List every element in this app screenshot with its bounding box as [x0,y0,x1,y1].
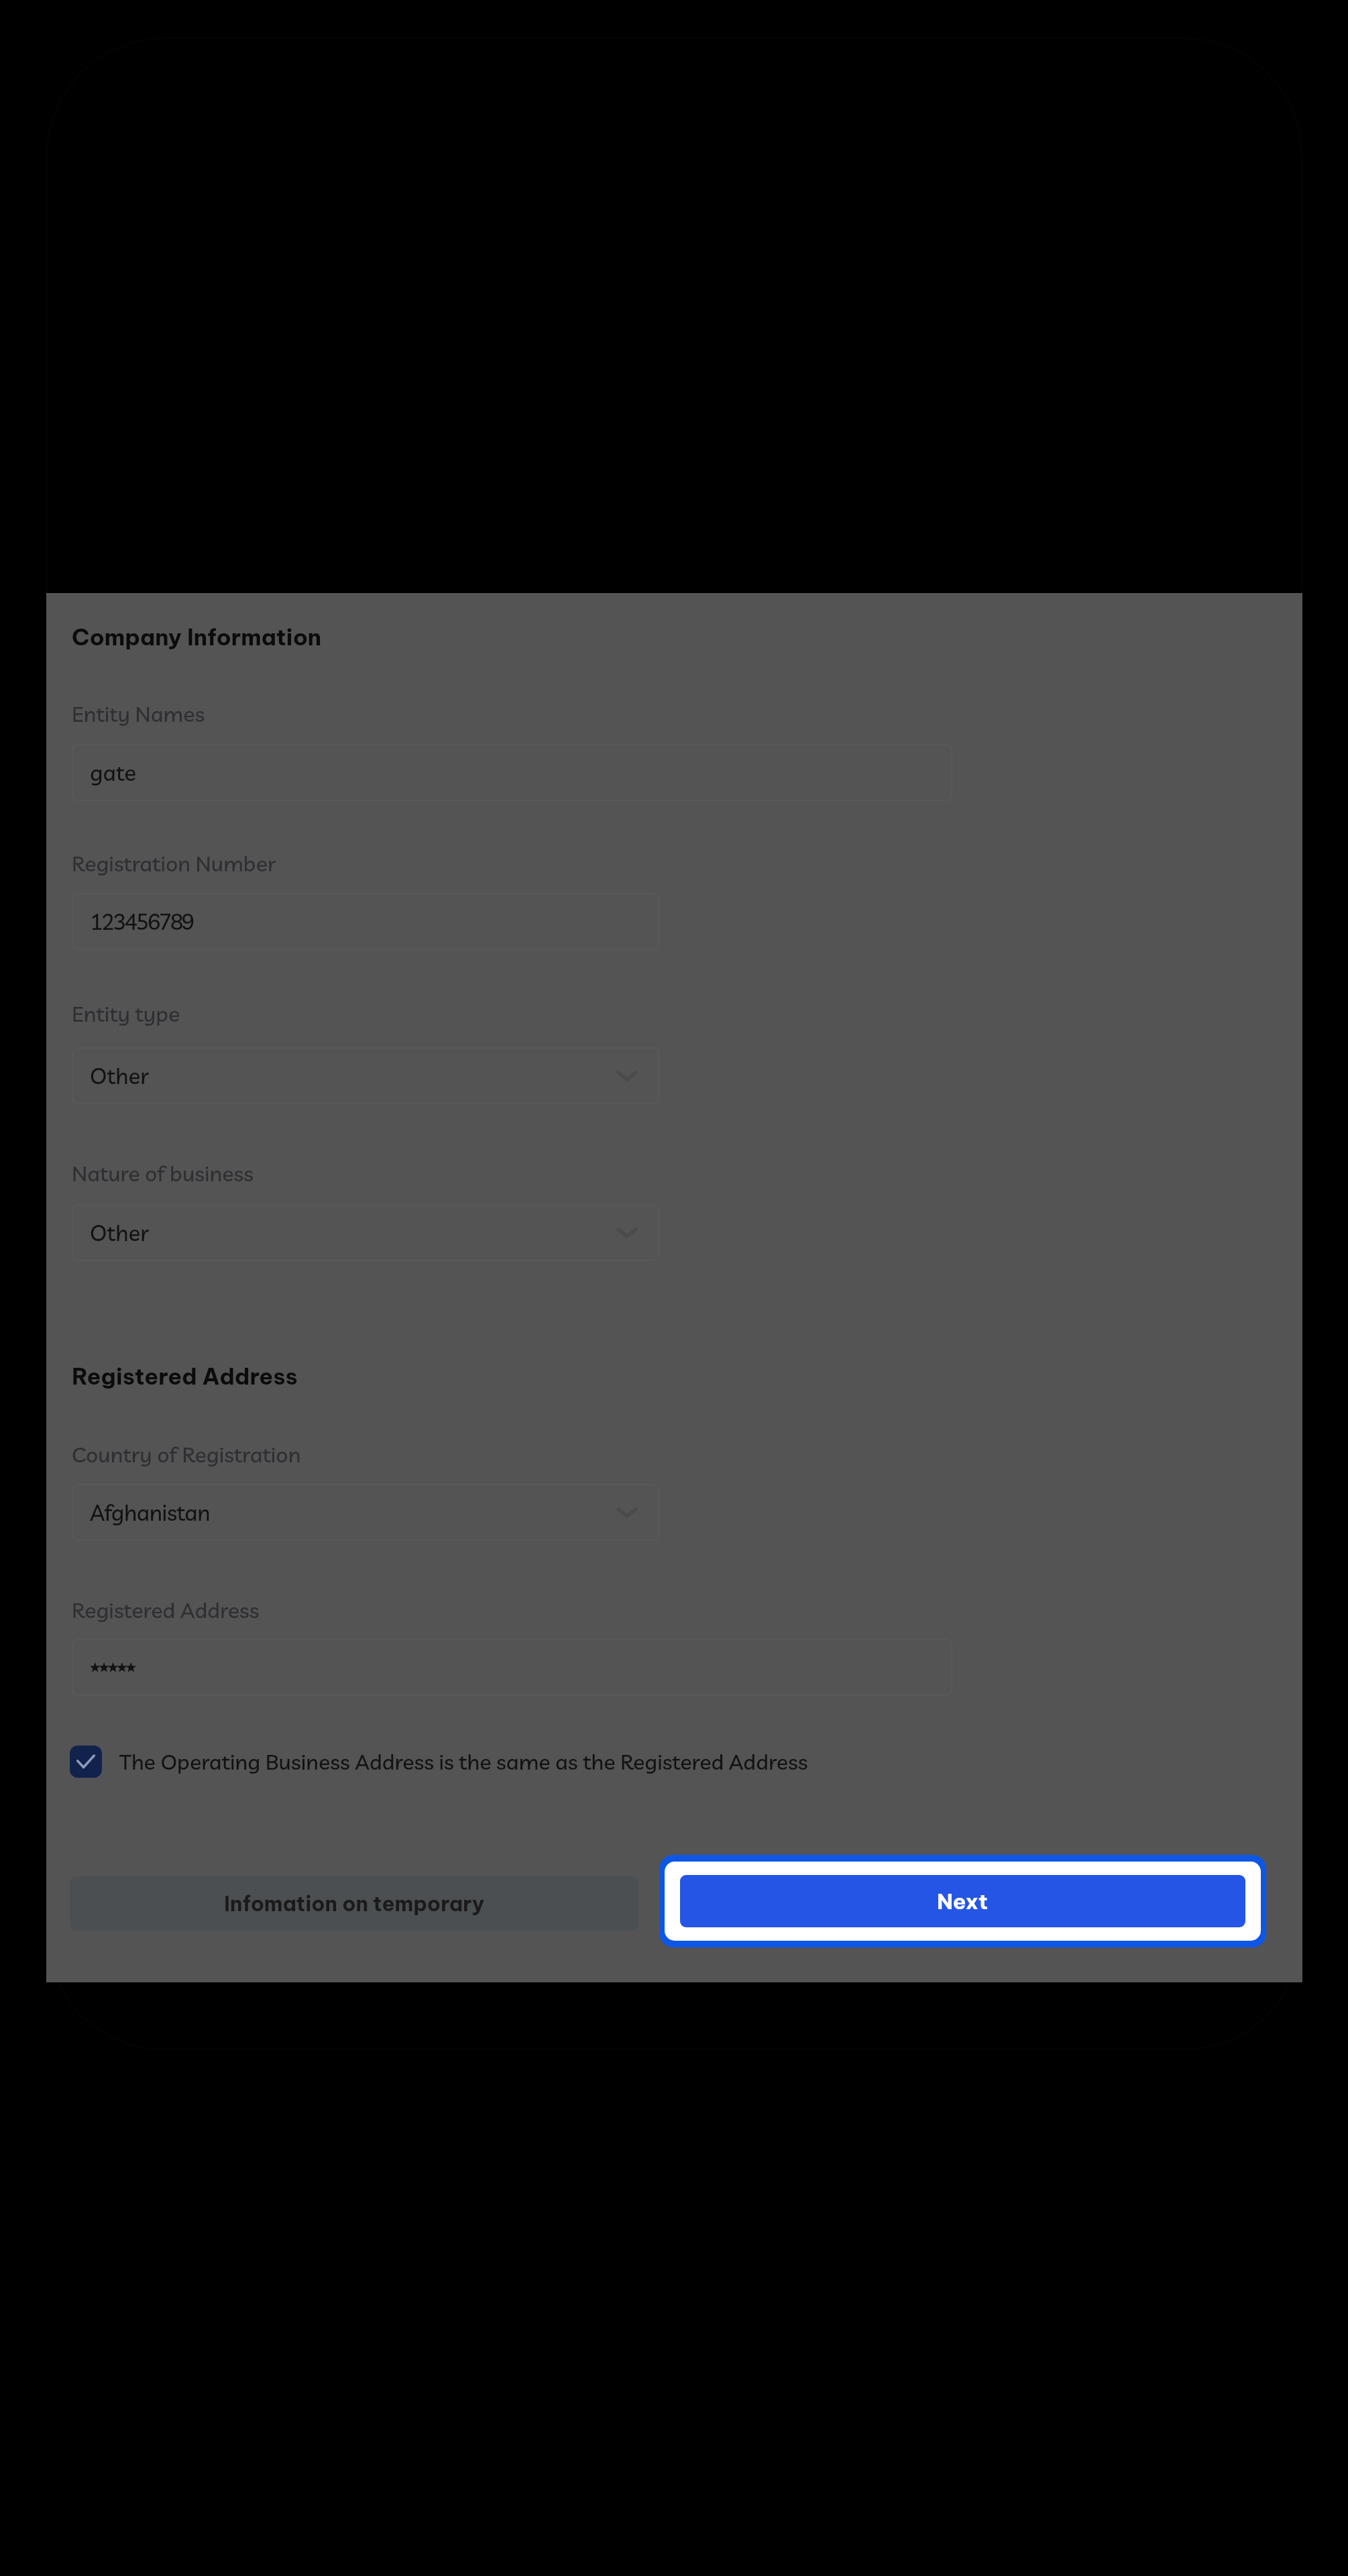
staticText: 123456789 [90,908,193,935]
staticText: Registration Number [72,850,276,877]
staticText: Registered Address [72,1362,298,1391]
button[interactable]: 123456789 [72,893,659,950]
staticText: Nature of business [72,1160,254,1187]
staticText: gate [90,759,137,786]
button[interactable]: Other [72,1204,659,1261]
button[interactable]: The Operating Business Address is the sa… [70,1740,808,1783]
staticText: Other [90,1219,150,1246]
staticText: Registered Address [72,1597,260,1623]
other: Open Other dropdown [617,1223,637,1243]
button[interactable] [72,1639,952,1696]
button[interactable]: Next [680,1875,1245,1927]
staticText: Country of Registration [72,1441,301,1468]
other: Open Afghanistan dropdown [617,1503,637,1523]
staticText: Infomation on temporary [224,1890,485,1917]
button[interactable]: Afghanistan [72,1484,659,1541]
staticText: Afghanistan [90,1499,211,1526]
staticText: Company Information [72,623,322,651]
button[interactable]: Infomation on temporary [70,1876,638,1931]
button[interactable]: gate [72,744,952,801]
staticText: Entity Names [72,700,205,727]
staticText: The Operating Business Address is the sa… [119,1748,808,1775]
other: Open Other dropdown [617,1066,637,1086]
staticText: Next [937,1888,989,1915]
button[interactable]: Other [72,1047,659,1104]
staticText: Entity type [72,1000,180,1027]
staticText: Other [90,1062,150,1089]
